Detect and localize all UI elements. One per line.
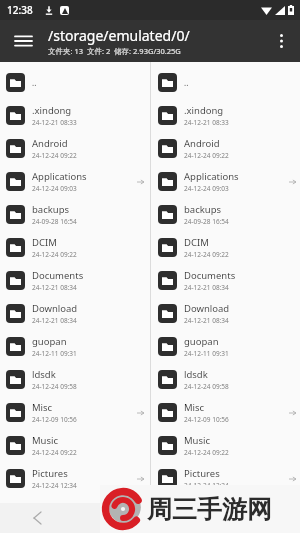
button[interactable]: backups — [0, 198, 148, 231]
button[interactable]: Android — [0, 132, 148, 165]
staticText: guopan — [184, 335, 219, 348]
staticText: 24-12-09 10:56 — [184, 415, 229, 424]
staticText: 24-12-24 09:22 — [32, 250, 77, 259]
staticText: 24-12-24 09:22 — [184, 151, 229, 160]
staticText: 24-12-21 08:34 — [32, 316, 77, 325]
staticText: 24-12-24 09:03 — [32, 184, 77, 193]
button[interactable]: More options — [268, 28, 294, 54]
button[interactable]: Pictures — [0, 462, 148, 495]
staticText: .. — [32, 77, 37, 88]
button[interactable]: Pictures — [152, 462, 300, 495]
staticText: backups — [184, 203, 222, 216]
button[interactable]: .. — [152, 66, 300, 99]
staticText: DCIM — [184, 236, 209, 249]
button[interactable]: Download — [0, 297, 148, 330]
staticText: .xindong — [32, 104, 72, 117]
button[interactable]: guopan — [152, 330, 300, 363]
button[interactable]: Applications — [0, 165, 148, 198]
staticText: Pictures — [184, 467, 220, 480]
button[interactable]: Open navigation menu — [10, 28, 36, 54]
button[interactable]: DCIM — [0, 231, 148, 264]
staticText: /storage/emulated/0/ — [48, 26, 190, 45]
staticText: Android — [184, 137, 220, 150]
button[interactable]: DCIM — [152, 231, 300, 264]
staticText: 24-12-21 08:34 — [184, 316, 229, 325]
staticText: .xindong — [184, 104, 224, 117]
button[interactable]: Music — [0, 429, 148, 462]
staticText: DCIM — [32, 236, 57, 249]
staticText: Music — [32, 434, 59, 447]
button[interactable]: ldsdk — [152, 363, 300, 396]
staticText: 24-12-24 09:22 — [32, 448, 77, 457]
button[interactable]: Download — [152, 297, 300, 330]
staticText: Pictures — [32, 467, 68, 480]
staticText: Documents — [32, 269, 84, 282]
button[interactable]: Applications — [152, 165, 300, 198]
staticText: 文件夹: 13 文件: 2 储存: 2.93G/30.25G — [48, 46, 181, 56]
staticText: ldsdk — [184, 368, 208, 381]
button[interactable]: Back — [0, 503, 75, 533]
staticText: Misc — [32, 401, 53, 414]
staticText: 24-12-24 09:03 — [184, 184, 229, 193]
staticText: Applications — [184, 170, 239, 183]
staticText: 24-09-28 16:54 — [32, 217, 77, 226]
staticText: 24-12-24 09:22 — [184, 250, 229, 259]
staticText: 24-12-11 09:31 — [32, 349, 77, 358]
staticText: 24-12-21 08:33 — [32, 118, 77, 127]
staticText: 24-12-24 12:34 — [32, 481, 77, 490]
button[interactable]: Android — [152, 132, 300, 165]
staticText: 24-12-21 08:33 — [184, 118, 229, 127]
staticText: Android — [32, 137, 68, 150]
staticText: 24-12-24 09:58 — [184, 382, 229, 391]
button[interactable]: backups — [152, 198, 300, 231]
button[interactable]: Misc — [152, 396, 300, 429]
button[interactable]: Documents — [152, 264, 300, 297]
staticText: 24-12-24 09:22 — [32, 151, 77, 160]
staticText: 24-12-24 09:22 — [184, 448, 229, 457]
staticText: guopan — [32, 335, 67, 348]
staticText: 24-12-21 08:34 — [184, 283, 229, 292]
staticText: 24-12-09 10:56 — [32, 415, 77, 424]
staticText: backups — [32, 203, 70, 216]
staticText: Music — [184, 434, 211, 447]
button[interactable]: .xindong — [152, 99, 300, 132]
button[interactable]: Forward — [75, 503, 150, 533]
button[interactable]: Documents — [0, 264, 148, 297]
staticText: Documents — [184, 269, 236, 282]
staticText: Download — [32, 302, 78, 315]
button[interactable]: .. — [0, 66, 148, 99]
staticText: 24-12-11 09:31 — [184, 349, 229, 358]
button[interactable]: .xindong — [0, 99, 148, 132]
staticText: Applications — [32, 170, 87, 183]
staticText: ldsdk — [32, 368, 56, 381]
button[interactable]: ldsdk — [0, 363, 148, 396]
staticText: 24-12-24 09:58 — [32, 382, 77, 391]
button[interactable]: Misc — [0, 396, 148, 429]
staticText: Download — [184, 302, 230, 315]
staticText: 24-12-24 12:34 — [184, 481, 229, 490]
staticText: .. — [184, 77, 189, 88]
staticText: 周三手游网 — [147, 494, 272, 525]
staticText: 24-09-28 16:54 — [184, 217, 229, 226]
staticText: Misc — [184, 401, 205, 414]
button[interactable]: guopan — [0, 330, 148, 363]
staticText: 12:38 — [7, 3, 33, 17]
staticText: 24-12-21 08:34 — [32, 283, 77, 292]
button[interactable]: Music — [152, 429, 300, 462]
